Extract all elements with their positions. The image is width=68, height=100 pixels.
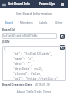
staticText: Board Id: [2, 28, 15, 32]
staticText: Get Board Info: [8, 2, 30, 6]
staticText: 2019-01-18: [35, 83, 50, 87]
staticText: Labels: [39, 21, 48, 25]
staticText: "descData": null,: [4, 67, 44, 71]
staticText: Other: [55, 21, 63, 25]
staticText: 5c41a6f21cdeb1d93df73d8e: [3, 34, 38, 38]
staticText: "name": "x",: [4, 57, 35, 61]
staticText: Board Creation Date: [2, 83, 33, 87]
staticText: About Trello Tricks Terms: [0, 90, 68, 94]
button[interactable]: Other: [54, 21, 64, 25]
staticText: {: [4, 47, 6, 51]
staticText: JSON: [2, 40, 10, 44]
button[interactable]: Account: [60, 2, 65, 7]
button[interactable]: Labels: [38, 21, 49, 25]
staticText: "closed": false,: [4, 72, 42, 76]
button[interactable]: Copy board id: [59, 33, 65, 39]
staticText: Get Board Information: [0, 11, 68, 16]
staticText: Power-Ups: [39, 2, 56, 6]
button[interactable]: Get Board Info: [8, 2, 30, 6]
button[interactable]: Board: [4, 21, 14, 25]
staticText: Board: [5, 21, 13, 25]
button[interactable]: Menu: [1, 2, 6, 7]
staticText: "id": "5c41a6f21cdeb",: [4, 52, 53, 56]
button[interactable]: Power-Ups: [39, 2, 56, 6]
staticText: Members: [20, 21, 33, 25]
button[interactable]: Copy JSON: [59, 44, 65, 50]
button[interactable]: Members: [19, 21, 34, 25]
staticText: "url": "https://trello.c": [4, 77, 59, 81]
button[interactable]: 5c41a6f21cdeb1d93df73d8e: [3, 33, 56, 39]
staticText: "desc": "",: [4, 62, 33, 66]
